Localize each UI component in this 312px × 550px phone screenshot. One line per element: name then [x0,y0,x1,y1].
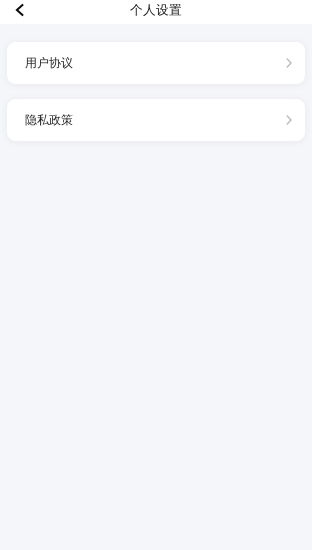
staticText: 个人设置 [130,2,182,18]
staticText: 用户协议 [25,55,73,70]
button[interactable]: Back [5,0,35,22]
button[interactable]: 隐私政策 [7,99,305,141]
button[interactable]: 用户协议 [7,42,305,84]
staticText: 隐私政策 [25,112,73,127]
